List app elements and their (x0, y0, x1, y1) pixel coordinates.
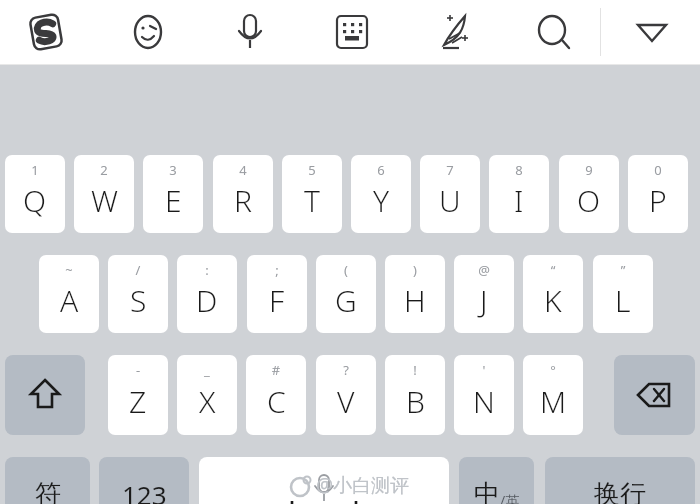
button[interactable]: 7 (420, 155, 480, 233)
staticText: 123 (122, 477, 167, 504)
button[interactable]: 9 (559, 155, 619, 233)
button[interactable]: Backspace (614, 355, 695, 435)
button[interactable]: ' (454, 355, 514, 435)
staticText: 7 (420, 161, 480, 179)
staticText: ° (523, 361, 583, 379)
button[interactable]: 3 (143, 155, 203, 233)
button[interactable]: _ (177, 355, 237, 435)
staticText: _ (177, 361, 237, 379)
staticText: B (406, 381, 425, 422)
staticText: ? (316, 361, 376, 379)
staticText: 2 (74, 161, 134, 179)
staticText: X (199, 381, 216, 422)
button[interactable]: ? (316, 355, 376, 435)
button[interactable]: Voice input (224, 6, 276, 58)
staticText: ” (593, 261, 653, 279)
staticText: @小白测评 (316, 472, 410, 498)
staticText: ~ (39, 261, 99, 279)
button[interactable]: Emoji (122, 6, 174, 58)
staticText: U (439, 180, 461, 221)
button[interactable]: Sogou (20, 6, 72, 58)
staticText: M (540, 381, 567, 422)
button[interactable]: 2 (74, 155, 134, 233)
staticText: V (337, 381, 355, 422)
button[interactable]: 0 (628, 155, 688, 233)
staticText: 6 (351, 161, 411, 179)
staticText: - (108, 361, 168, 379)
staticText: / (108, 261, 168, 279)
staticText: J (480, 280, 488, 321)
button[interactable]: - (108, 355, 168, 435)
staticText: R (234, 180, 252, 221)
button[interactable]: ” (593, 255, 653, 333)
button[interactable]: “ (523, 255, 583, 333)
button[interactable]: 8 (489, 155, 549, 233)
button[interactable]: Search (528, 6, 580, 58)
staticText: K (544, 280, 562, 321)
staticText: C (267, 381, 286, 422)
button[interactable]: ° (523, 355, 583, 435)
staticText: F (269, 280, 285, 321)
staticText: Q (23, 180, 47, 221)
staticText: E (165, 180, 182, 221)
button[interactable]: Handwriting (428, 6, 480, 58)
button[interactable]: 6 (351, 155, 411, 233)
staticText: Z (129, 381, 147, 422)
staticText: G (335, 280, 357, 321)
staticText: @ (454, 261, 514, 279)
staticText: Y (373, 180, 390, 221)
button[interactable]: : (177, 255, 237, 333)
button[interactable]: ; (247, 255, 307, 333)
button[interactable]: 4 (213, 155, 273, 233)
staticText: # (246, 361, 306, 379)
staticText: N (473, 381, 495, 422)
button[interactable]: Hide keyboard (626, 6, 678, 58)
staticText: 中 (474, 478, 500, 504)
staticText: S (130, 280, 147, 321)
button[interactable]: / (108, 255, 168, 333)
staticText: 3 (143, 161, 203, 179)
staticText: : (177, 261, 237, 279)
button[interactable]: Keyboard layout (326, 6, 378, 58)
staticText: 0 (628, 161, 688, 179)
staticText: D (196, 280, 218, 321)
button[interactable]: @ (454, 255, 514, 333)
button[interactable]: ( (316, 255, 376, 333)
staticText: H (404, 280, 426, 321)
staticText: T (304, 180, 320, 221)
staticText: 9 (559, 161, 619, 179)
button[interactable]: 符 (5, 457, 90, 504)
staticText: 4 (213, 161, 273, 179)
staticText: A (60, 280, 79, 321)
staticText: I (514, 180, 524, 221)
button[interactable]: 中 (459, 457, 534, 504)
staticText: 换行 (594, 478, 646, 504)
staticText: 5 (282, 161, 342, 179)
staticText: 符 (35, 478, 61, 504)
button[interactable]: 换行 (545, 457, 695, 504)
staticText: ; (247, 261, 307, 279)
staticText: W (91, 180, 118, 221)
staticText: ) (385, 261, 445, 279)
button[interactable]: 1 (5, 155, 65, 233)
staticText: O (577, 180, 601, 221)
staticText: ( (316, 261, 376, 279)
staticText: P (649, 180, 667, 221)
button[interactable]: ) (385, 255, 445, 333)
staticText: L (615, 280, 631, 321)
staticText: “ (523, 261, 583, 279)
button[interactable]: 5 (282, 155, 342, 233)
staticText: ! (385, 361, 445, 379)
button[interactable]: ! (385, 355, 445, 435)
button[interactable]: Space, voice input (199, 457, 449, 504)
button[interactable]: ~ (39, 255, 99, 333)
staticText: /英 (500, 491, 520, 504)
button[interactable]: 123 (99, 457, 189, 504)
button[interactable]: Shift (5, 355, 85, 435)
staticText: ' (454, 361, 514, 379)
button[interactable]: # (246, 355, 306, 435)
staticText: 8 (489, 161, 549, 179)
staticText: 1 (5, 161, 65, 179)
